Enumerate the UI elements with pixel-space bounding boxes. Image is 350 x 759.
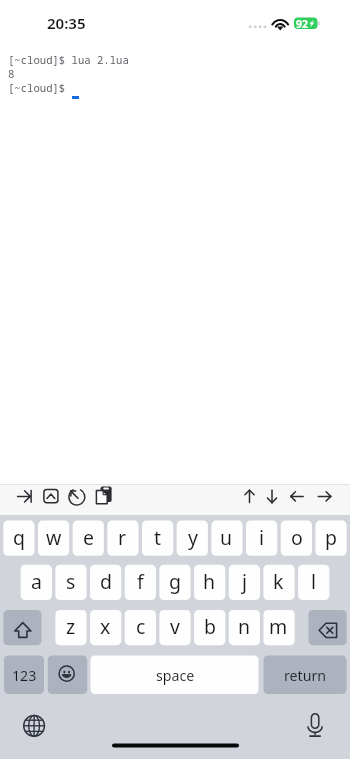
button[interactable]: a [21, 565, 52, 600]
staticText: c [136, 613, 146, 640]
staticText: return [284, 666, 327, 685]
button[interactable]: Escape [40, 486, 62, 513]
staticText: s [66, 568, 76, 595]
button[interactable]: r [107, 521, 138, 556]
button[interactable]: o [281, 521, 312, 556]
staticText: 123 [12, 666, 37, 685]
button[interactable]: History [64, 486, 88, 513]
button[interactable]: l [298, 565, 329, 600]
button[interactable]: v [159, 610, 190, 645]
button[interactable]: h [194, 565, 225, 600]
button[interactable]: w [38, 521, 69, 556]
button[interactable]: g [159, 565, 190, 600]
button[interactable]: Dictate [302, 712, 328, 738]
staticText: e [83, 524, 94, 551]
staticText: f [137, 568, 144, 595]
button[interactable]: x [90, 610, 121, 645]
staticText: l [311, 568, 317, 595]
staticText: [~cloud]$ [8, 81, 66, 95]
button[interactable]: j [229, 565, 260, 600]
staticText: v [170, 613, 180, 640]
staticText: 8 [8, 67, 15, 81]
staticText: n [238, 613, 251, 640]
button[interactable]: m [263, 610, 294, 645]
button[interactable]: Arrow right [313, 486, 336, 513]
staticText: w [46, 524, 62, 551]
button[interactable]: u [211, 521, 242, 556]
button[interactable]: c [125, 610, 156, 645]
button[interactable]: s [55, 565, 86, 600]
button[interactable]: Tab [10, 486, 38, 513]
button[interactable]: space [91, 656, 259, 695]
staticText: d [100, 568, 112, 595]
button[interactable]: d [90, 565, 121, 600]
button[interactable]: Arrow down [261, 486, 284, 513]
button[interactable]: y [177, 521, 208, 556]
button[interactable]: q [3, 521, 34, 556]
staticText: t [154, 524, 162, 551]
staticText: a [31, 568, 42, 595]
staticText: h [203, 568, 216, 595]
staticText: m [269, 613, 288, 640]
button[interactable]: p [315, 521, 346, 556]
staticText: x [100, 613, 111, 640]
button[interactable]: t [142, 521, 173, 556]
button[interactable]: f [125, 565, 156, 600]
button[interactable]: Arrow up [238, 486, 261, 513]
button[interactable]: b [194, 610, 225, 645]
staticText: i [259, 524, 265, 551]
staticText: z [66, 613, 76, 640]
button[interactable]: i [246, 521, 277, 556]
staticText: u [220, 524, 233, 551]
staticText: [~cloud]$ lua 2.lua [8, 53, 129, 67]
button[interactable]: k [263, 565, 294, 600]
button[interactable]: Arrow left [286, 486, 309, 513]
staticText: 20:35 [47, 13, 86, 33]
button[interactable]: return [264, 656, 347, 695]
button[interactable]: Paste [92, 486, 116, 513]
staticText: b [204, 613, 216, 640]
staticText: 92 [296, 17, 309, 31]
button[interactable]: z [55, 610, 86, 645]
button[interactable]: e [73, 521, 104, 556]
button[interactable]: Emoji [48, 656, 88, 695]
staticText: q [13, 524, 25, 551]
staticText: y [188, 524, 198, 551]
staticText: g [169, 568, 181, 595]
staticText: space [156, 666, 195, 685]
staticText: j [242, 568, 248, 595]
button[interactable]: Shift [3, 610, 41, 645]
staticText: k [273, 568, 284, 595]
button[interactable]: Backspace [309, 610, 347, 645]
staticText: p [325, 524, 337, 551]
staticText: r [118, 524, 127, 551]
staticText: o [291, 524, 303, 551]
button[interactable]: Change keyboard [20, 712, 46, 738]
button[interactable]: n [229, 610, 260, 645]
button[interactable]: 123 [4, 656, 44, 695]
